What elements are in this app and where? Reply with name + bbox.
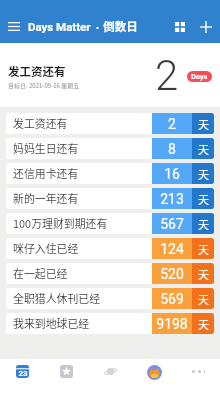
staticText: 569 xyxy=(160,291,184,307)
staticText: 天 xyxy=(198,241,209,257)
staticText: 天 xyxy=(198,316,209,332)
button[interactable]: More xyxy=(176,359,220,400)
staticText: 发工资还有 xyxy=(8,63,66,80)
button[interactable]: 妈妈生日还有 xyxy=(6,138,214,159)
button[interactable]: Add new countdown xyxy=(192,10,220,43)
button[interactable]: Switch to grid view xyxy=(167,10,192,43)
button[interactable]: 我来到地球已经 xyxy=(6,313,214,334)
staticText: 520 xyxy=(160,266,184,282)
button[interactable]: 全职猎人休刊已经 xyxy=(6,288,214,309)
staticText: 天 xyxy=(198,191,209,207)
staticText: 目标日: 2021-09-16 星期五 xyxy=(8,81,80,90)
staticText: 咪仔入住已经 xyxy=(13,240,79,256)
staticText: 还信用卡还有 xyxy=(13,165,79,181)
button[interactable]: Countdowns xyxy=(0,359,44,400)
button[interactable]: 发工资还有 xyxy=(0,43,220,107)
staticText: 8 xyxy=(168,141,176,157)
button[interactable]: 在一起已经 xyxy=(6,263,214,284)
staticText: 9198 xyxy=(156,316,188,332)
button[interactable]: 还信用卡还有 xyxy=(6,163,214,184)
staticText: 天 xyxy=(198,166,209,182)
staticText: 天 xyxy=(198,141,209,157)
staticText: Days Matter · 倒数日 xyxy=(28,18,138,35)
staticText: 天 xyxy=(198,291,209,307)
staticText: 23 xyxy=(18,369,28,378)
staticText: 新的一年还有 xyxy=(13,190,79,206)
staticText: 天 xyxy=(198,266,209,282)
staticText: 天 xyxy=(198,116,209,132)
button[interactable]: 发工资还有 xyxy=(6,113,214,134)
staticText: 2 xyxy=(168,116,176,132)
button[interactable]: Discover xyxy=(88,359,132,400)
staticText: 16 xyxy=(164,166,180,182)
staticText: 2 xyxy=(155,51,179,100)
staticText: 在一起已经 xyxy=(13,265,68,281)
staticText: 天 xyxy=(198,216,209,232)
staticText: Days xyxy=(191,72,208,81)
staticText: 全职猎人休刊已经 xyxy=(13,290,101,306)
staticText: 100万理财到期还有 xyxy=(13,215,108,231)
button[interactable]: 新的一年还有 xyxy=(6,188,214,209)
button[interactable]: 100万理财到期还有 xyxy=(6,213,214,234)
button[interactable]: Profile xyxy=(132,359,176,400)
staticText: 567 xyxy=(160,216,184,232)
button[interactable]: Open navigation menu xyxy=(0,10,28,43)
button[interactable]: Favorites xyxy=(44,359,88,400)
staticText: 妈妈生日还有 xyxy=(13,140,79,156)
staticText: 我来到地球已经 xyxy=(13,315,90,331)
staticText: 发工资还有 xyxy=(13,115,68,131)
button[interactable]: 咪仔入住已经 xyxy=(6,238,214,259)
staticText: 124 xyxy=(160,241,184,257)
staticText: 213 xyxy=(160,191,184,207)
